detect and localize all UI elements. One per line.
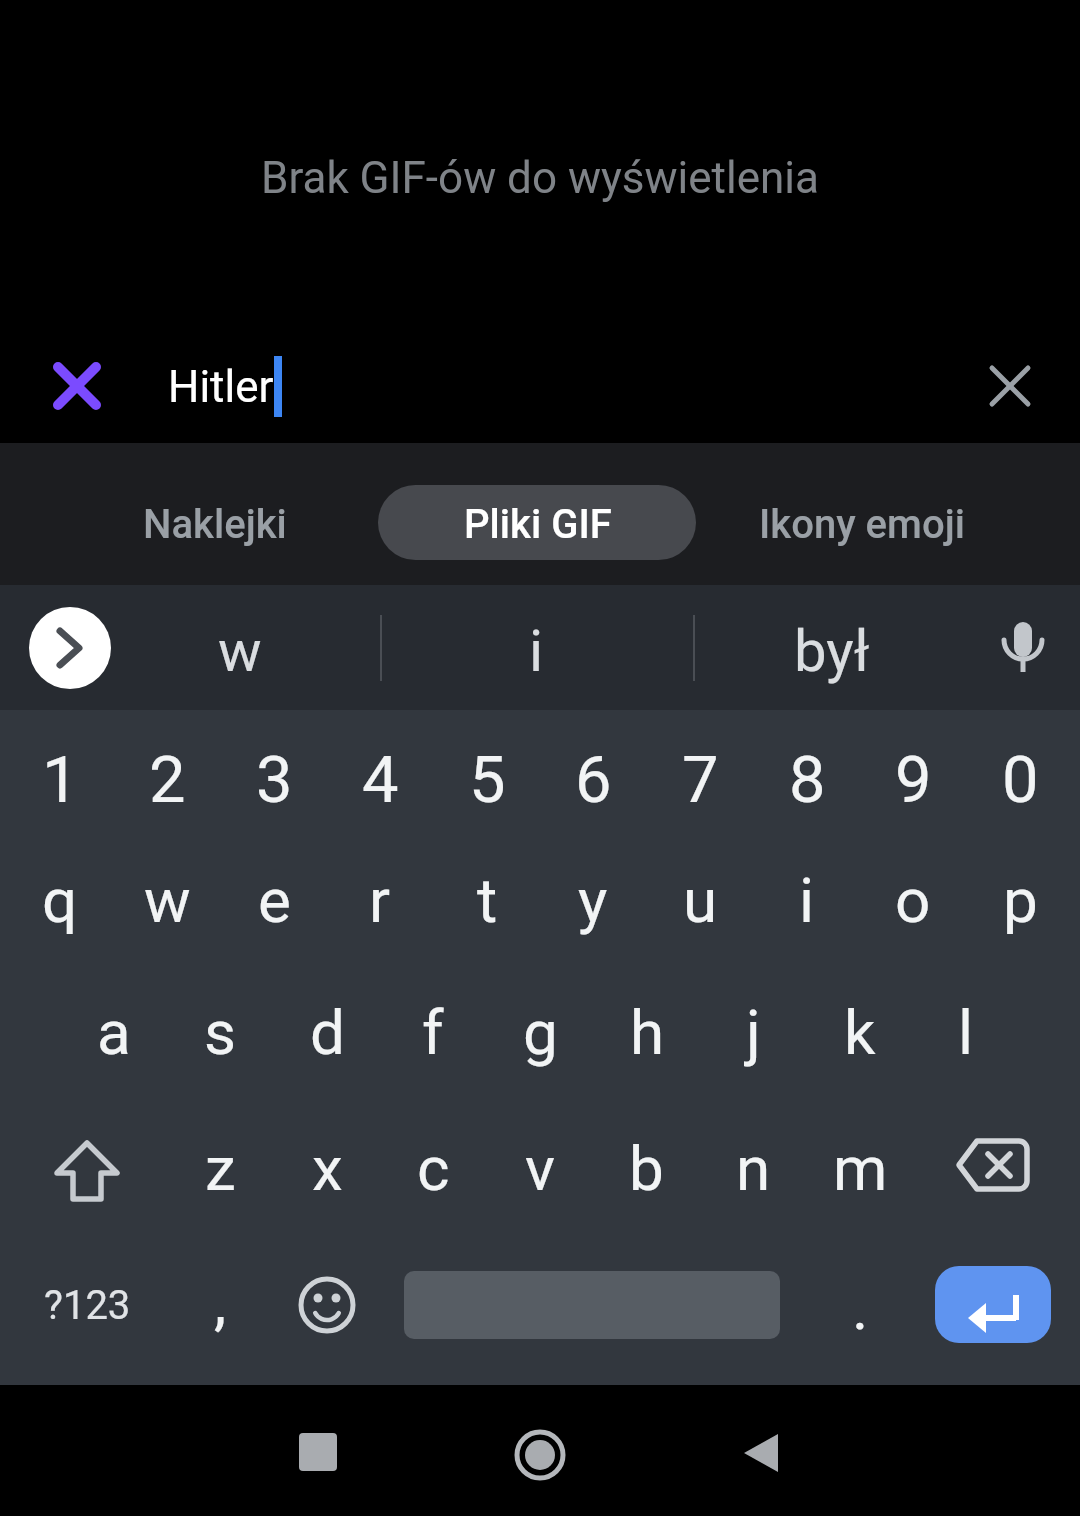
button[interactable]: 2 [114,717,220,843]
button[interactable]: d [274,969,380,1095]
button[interactable] [36,345,118,427]
button[interactable] [983,608,1063,688]
button[interactable] [274,1245,380,1365]
staticText: Ikony emoji [759,501,965,548]
staticText: 8 [789,742,826,818]
button[interactable] [378,485,696,560]
button[interactable]: x [274,1105,380,1231]
button[interactable]: n [700,1105,806,1231]
staticText: v [525,1132,556,1205]
button[interactable]: y [540,837,646,963]
button[interactable]: p [967,837,1073,963]
button[interactable]: e [221,837,327,963]
button[interactable]: 6 [540,717,646,843]
staticText: z [205,1132,236,1205]
staticText: 3 [256,742,293,818]
staticText: m [833,1132,888,1205]
button[interactable]: v [487,1105,593,1231]
staticText: Hitler [168,361,274,413]
button[interactable]: 8 [754,717,860,843]
staticText: i [529,617,544,685]
button[interactable]: . [807,1244,913,1370]
button[interactable]: Pliki GIF [388,487,688,562]
button[interactable]: s [167,969,273,1095]
button[interactable] [7,1113,167,1233]
button[interactable]: 3 [221,717,327,843]
staticText: s [204,996,236,1069]
button[interactable]: 4 [327,717,433,843]
staticText: o [895,864,931,937]
button[interactable]: i [754,837,860,963]
staticText: l [958,996,974,1069]
staticText: 6 [575,742,612,818]
staticText: f [422,996,444,1069]
staticText: u [683,864,718,937]
button[interactable]: 9 [860,717,966,843]
button[interactable] [970,346,1050,426]
button[interactable]: k [807,969,913,1095]
button[interactable]: u [647,837,753,963]
staticText: był [794,617,870,685]
button[interactable]: m [807,1105,913,1231]
button[interactable]: Ikony emoji [742,487,982,562]
button[interactable]: l [913,969,1019,1095]
staticText: ?123 [44,1282,131,1329]
staticText: j [746,996,761,1069]
button[interactable]: 1 [7,717,113,843]
staticText: 7 [682,742,719,818]
button[interactable]: f [380,969,486,1095]
button[interactable]: j [700,969,806,1095]
staticText: g [523,996,558,1069]
staticText: b [629,1132,664,1205]
button[interactable]: w [114,837,220,963]
button[interactable]: r [327,837,433,963]
staticText: 9 [895,742,932,818]
button[interactable]: 0 [967,717,1073,843]
staticText: Brak GIF-ów do wyświetlenia [261,152,819,204]
button[interactable] [735,1425,795,1485]
button[interactable] [935,1266,1051,1343]
staticText: 1 [42,742,79,818]
staticText: 4 [362,742,399,818]
button[interactable]: c [380,1105,486,1231]
staticText: 2 [149,742,186,818]
button[interactable]: h [594,969,700,1095]
staticText: Pliki GIF [464,501,612,548]
staticText: k [844,996,876,1069]
button[interactable]: a [61,969,167,1095]
button[interactable]: w [130,598,350,704]
staticText: , [214,1266,227,1339]
staticText: c [417,1132,450,1205]
staticText: w [218,617,262,685]
staticText: a [97,996,131,1069]
staticText: t [477,864,498,937]
staticText: Naklejki [143,501,287,548]
button[interactable]: t [434,837,540,963]
staticText: h [630,996,665,1069]
staticText: r [369,864,391,937]
staticText: x [312,1132,343,1205]
staticText: 5 [469,742,506,818]
staticText: 0 [1002,742,1039,818]
button[interactable]: , [167,1239,273,1365]
button[interactable]: i [426,598,646,704]
button[interactable]: q [7,837,113,963]
button[interactable]: z [167,1105,273,1231]
button[interactable]: był [722,598,942,704]
button[interactable]: Naklejki [115,487,315,562]
button[interactable] [505,1420,575,1490]
button[interactable]: 5 [434,717,540,843]
staticText: n [736,1132,771,1205]
button[interactable]: b [593,1105,699,1231]
button[interactable] [29,607,111,689]
staticText: w [144,864,191,937]
staticText: i [799,864,815,937]
button[interactable] [299,1433,337,1471]
button[interactable] [913,1113,1073,1233]
button[interactable]: ?123 [7,1245,167,1365]
button[interactable]: 7 [647,717,753,843]
button[interactable]: o [860,837,966,963]
staticText: q [42,864,78,937]
button[interactable]: g [487,969,593,1095]
